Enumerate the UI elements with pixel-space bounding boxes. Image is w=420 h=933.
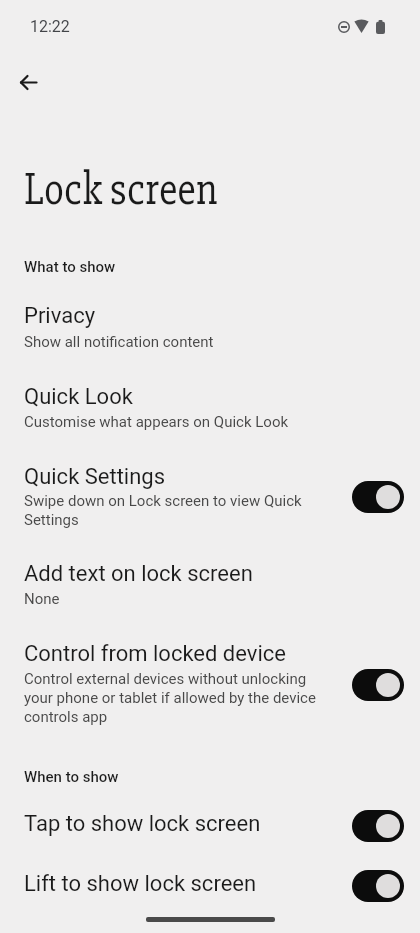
staticText: What to show [24, 258, 116, 276]
button[interactable] [352, 669, 404, 701]
staticText: When to show [24, 768, 119, 786]
button[interactable]: Lift to show lock screen [0, 858, 420, 916]
staticText: Tap to show lock screen [24, 811, 261, 837]
button[interactable]: Tap to show lock screen [0, 798, 420, 856]
staticText: Lock screen [24, 161, 217, 217]
staticText: 12:22 [30, 17, 70, 36]
button[interactable] [352, 810, 404, 842]
button[interactable] [352, 870, 404, 902]
staticText: None [24, 590, 324, 608]
staticText: Control external devices without unlocki… [24, 670, 324, 726]
staticText: Add text on lock screen [24, 561, 253, 587]
staticText: Quick Settings [24, 464, 166, 490]
staticText: Lift to show lock screen [24, 871, 257, 897]
staticText: Swipe down on Lock screen to view Quick … [24, 492, 324, 529]
button[interactable] [8, 62, 48, 102]
button[interactable]: Privacy [0, 292, 420, 364]
button[interactable] [352, 481, 404, 513]
staticText: Quick Look [24, 384, 133, 410]
staticText: Show all notification content [24, 333, 324, 351]
staticText: Privacy [24, 303, 96, 329]
button[interactable]: Control from locked device [0, 630, 420, 740]
staticText: Customise what appears on Quick Look [24, 413, 324, 431]
staticText: Control from locked device [24, 641, 286, 667]
button[interactable]: Add text on lock screen [0, 550, 420, 622]
button[interactable]: Quick Look [0, 373, 420, 445]
button[interactable]: Quick Settings [0, 453, 420, 543]
